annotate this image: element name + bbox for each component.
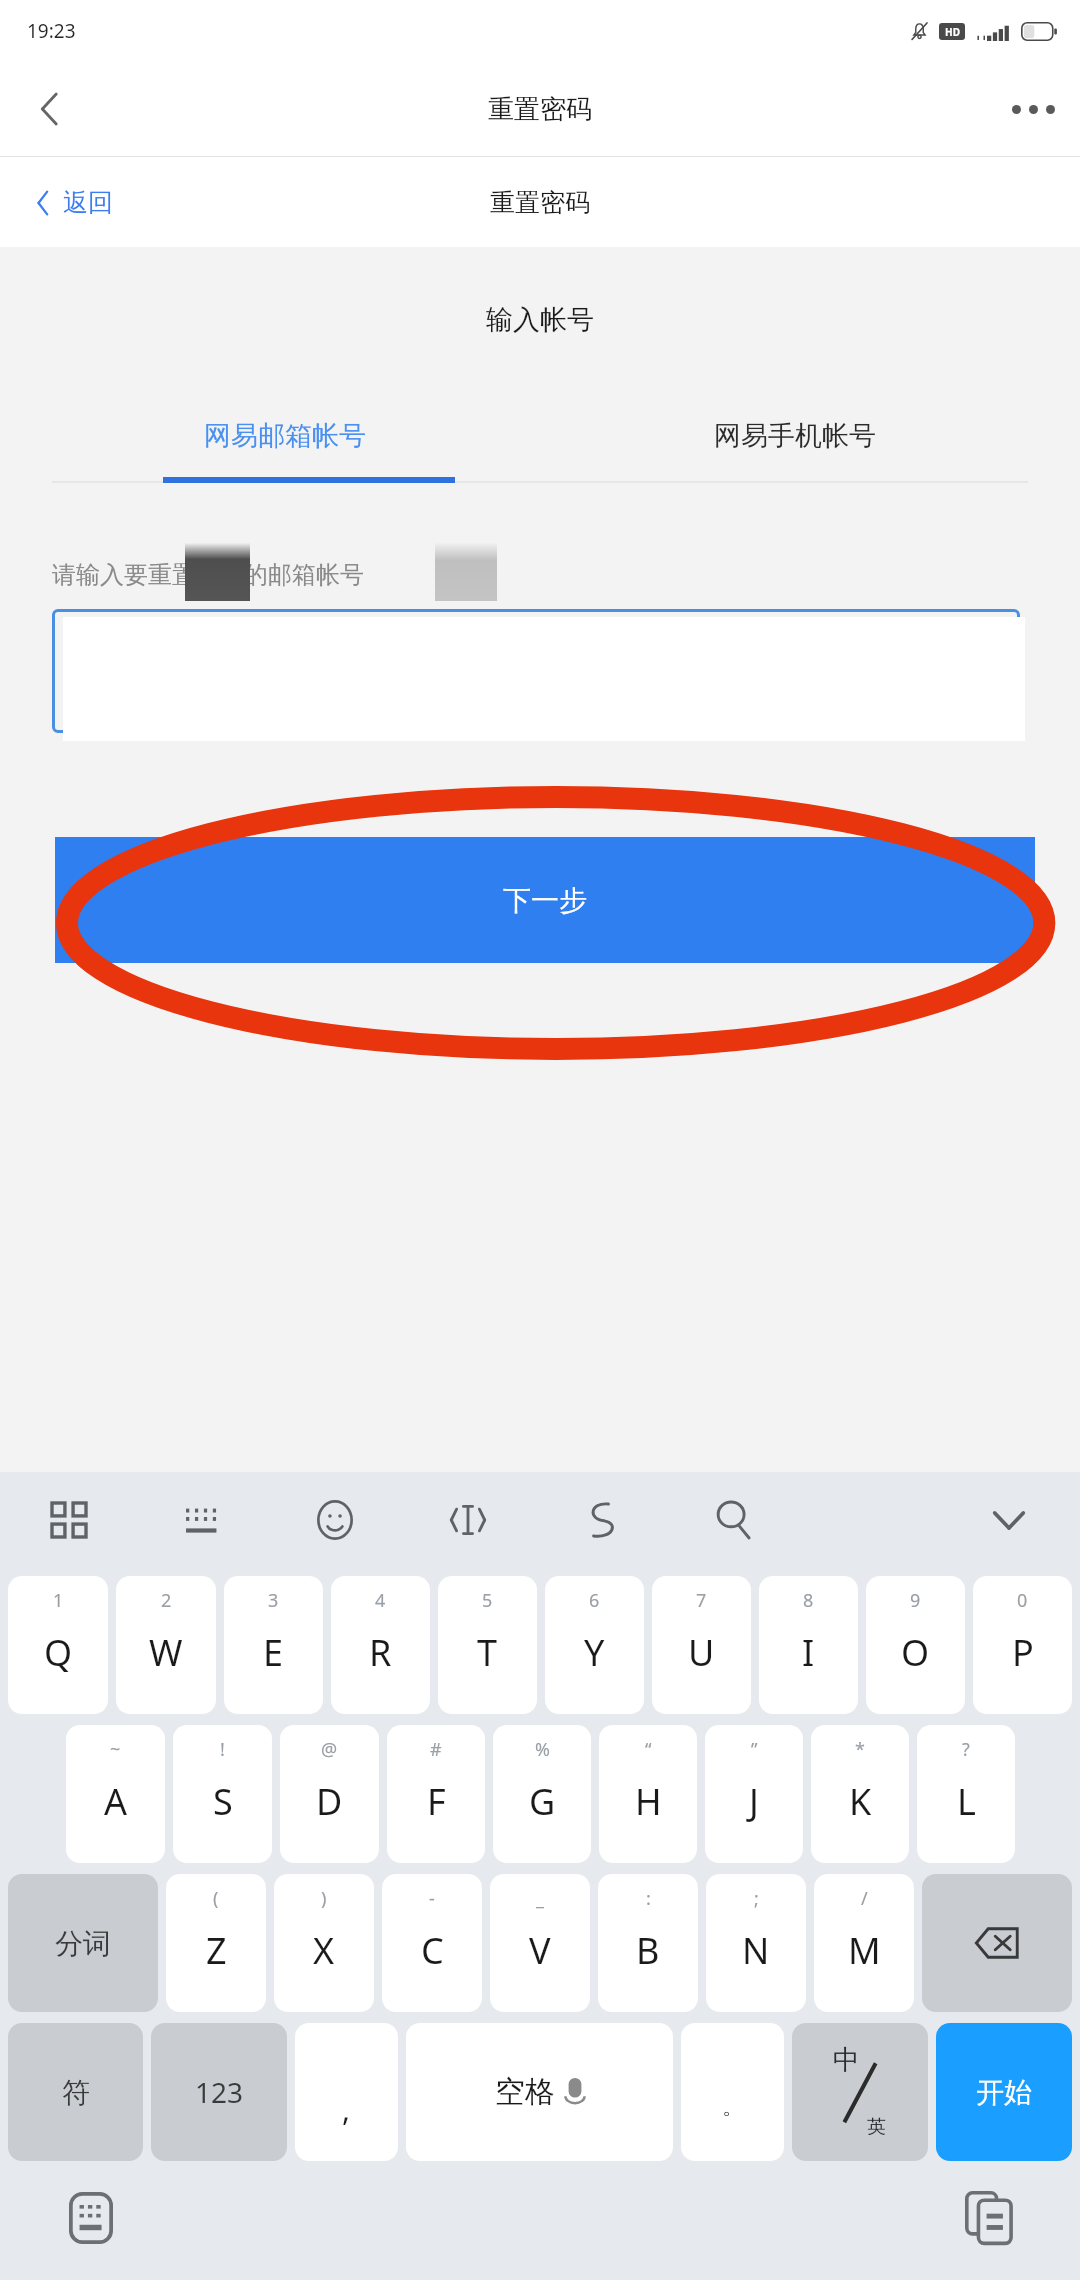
- staticText: ~: [110, 1737, 121, 1762]
- button[interactable]: ~: [66, 1725, 165, 1863]
- staticText: 1: [53, 1588, 64, 1613]
- button[interactable]: Switch Chinese English: [792, 2023, 928, 2161]
- button[interactable]: 0: [973, 1576, 1072, 1714]
- staticText: N: [742, 1926, 770, 1975]
- button[interactable]: ”: [705, 1725, 803, 1863]
- button[interactable]: Grid: [40, 1491, 98, 1549]
- button[interactable]: ,: [295, 2023, 398, 2161]
- button[interactable]: -: [382, 1874, 482, 2012]
- button[interactable]: Edit cursor: [439, 1491, 497, 1549]
- staticText: *: [855, 1737, 865, 1762]
- staticText: U: [688, 1628, 715, 1677]
- staticText: /: [861, 1886, 868, 1911]
- button[interactable]: 123: [151, 2023, 287, 2161]
- staticText: 2: [161, 1588, 172, 1613]
- staticText: “: [645, 1737, 652, 1762]
- button[interactable]: ;: [706, 1874, 806, 2012]
- staticText: B: [636, 1926, 660, 1975]
- button[interactable]: 分词: [8, 1874, 158, 2012]
- button[interactable]: /: [814, 1874, 914, 2012]
- button[interactable]: Switch input method: [52, 2179, 130, 2257]
- button[interactable]: Emoji: [306, 1491, 364, 1549]
- staticText: J: [749, 1777, 759, 1826]
- button[interactable]: 8: [759, 1576, 858, 1714]
- staticText: 分词: [55, 1926, 111, 1961]
- button[interactable]: 网易手机帐号: [540, 395, 1050, 477]
- staticText: P: [1012, 1628, 1034, 1677]
- staticText: C: [421, 1926, 444, 1975]
- staticText: 8: [803, 1588, 814, 1613]
- staticText: ,: [342, 2089, 351, 2130]
- button[interactable]: 5: [438, 1576, 537, 1714]
- button[interactable]: 符: [8, 2023, 143, 2161]
- staticText: A: [104, 1777, 128, 1826]
- staticText: 网易手机帐号: [714, 419, 876, 453]
- staticText: Z: [206, 1926, 227, 1975]
- button[interactable]: *: [811, 1725, 909, 1863]
- staticText: @: [321, 1737, 338, 1762]
- button[interactable]: ?: [917, 1725, 1015, 1863]
- staticText: F: [427, 1777, 446, 1826]
- staticText: ;: [754, 1886, 759, 1911]
- button[interactable]: 返回: [36, 187, 113, 218]
- button[interactable]: 6: [545, 1576, 644, 1714]
- button[interactable]: 1: [8, 1576, 108, 1714]
- button[interactable]: Search: [705, 1491, 763, 1549]
- staticText: 英: [867, 2115, 886, 2139]
- button[interactable]: @: [280, 1725, 379, 1863]
- button[interactable]: #: [387, 1725, 485, 1863]
- staticText: H: [635, 1777, 662, 1826]
- staticText: !: [220, 1737, 225, 1762]
- button[interactable]: !: [173, 1725, 272, 1863]
- button[interactable]: 网易邮箱帐号: [30, 395, 540, 477]
- staticText: I: [802, 1628, 815, 1677]
- staticText: 输入帐号: [0, 303, 1080, 337]
- staticText: X: [313, 1926, 335, 1975]
- staticText: S: [213, 1777, 233, 1826]
- staticText: ?: [962, 1737, 970, 1762]
- staticText: Q: [44, 1628, 73, 1677]
- staticText: 7: [696, 1588, 707, 1613]
- staticText: W: [149, 1628, 183, 1677]
- button[interactable]: Clipboard history: [950, 2179, 1028, 2257]
- staticText: M: [848, 1926, 881, 1975]
- staticText: 请输入要重置密码的邮箱帐号: [52, 560, 364, 590]
- staticText: V: [529, 1926, 551, 1975]
- staticText: %: [535, 1737, 550, 1762]
- button[interactable]: 空格: [406, 2023, 673, 2161]
- button[interactable]: “: [599, 1725, 697, 1863]
- button[interactable]: Backspace: [922, 1874, 1072, 2012]
- staticText: Y: [584, 1628, 605, 1677]
- staticText: K: [849, 1777, 872, 1826]
- button[interactable]: _: [490, 1874, 590, 2012]
- staticText: 符: [62, 2075, 90, 2110]
- button[interactable]: %: [493, 1725, 591, 1863]
- staticText: 123: [195, 2073, 244, 2111]
- staticText: D: [316, 1777, 343, 1826]
- button[interactable]: More options: [1002, 78, 1064, 140]
- button[interactable]: 开始: [936, 2023, 1072, 2161]
- button[interactable]: 9: [866, 1576, 965, 1714]
- button[interactable]: 下一步: [55, 837, 1035, 963]
- button[interactable]: Keyboard layout: [173, 1491, 231, 1549]
- staticText: :: [646, 1886, 651, 1911]
- staticText: 9: [910, 1588, 921, 1613]
- staticText: 6: [589, 1588, 600, 1613]
- button[interactable]: 3: [224, 1576, 323, 1714]
- button[interactable]: 。: [681, 2023, 784, 2161]
- button[interactable]: (: [166, 1874, 266, 2012]
- button[interactable]: Hide keyboard: [980, 1491, 1038, 1549]
- button[interactable]: 2: [116, 1576, 216, 1714]
- button[interactable]: :: [598, 1874, 698, 2012]
- staticText: 返回: [63, 187, 113, 218]
- button[interactable]: ): [274, 1874, 374, 2012]
- staticText: 网易邮箱帐号: [204, 419, 366, 453]
- staticText: HD: [945, 25, 960, 39]
- button[interactable]: 7: [652, 1576, 751, 1714]
- staticText: -: [429, 1886, 435, 1911]
- button[interactable]: Back: [18, 78, 80, 140]
- button[interactable]: Clipboard: [572, 1491, 630, 1549]
- staticText: _: [536, 1886, 544, 1911]
- button[interactable]: 4: [331, 1576, 430, 1714]
